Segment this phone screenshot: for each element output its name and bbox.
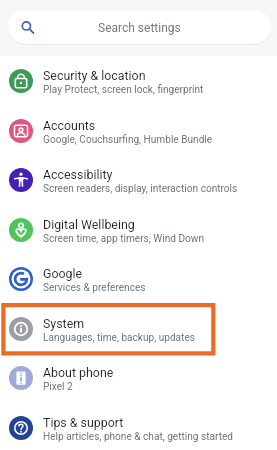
button[interactable]: Search settings xyxy=(8,10,271,44)
staticText: Screen readers, display, interaction con… xyxy=(43,183,238,195)
staticText: Security & location xyxy=(43,68,146,83)
other: Accounts xyxy=(9,119,33,143)
staticText: Accounts xyxy=(43,118,96,133)
staticText: Screen time, app timers, Wind Down xyxy=(43,233,204,245)
staticText: Tips & support xyxy=(43,415,124,430)
staticText: About phone xyxy=(43,365,114,380)
button[interactable]: Digital Wellbeing xyxy=(0,205,277,254)
staticText: Digital Wellbeing xyxy=(43,217,135,232)
button[interactable]: System xyxy=(0,304,277,353)
other: System xyxy=(9,317,33,341)
button[interactable]: Accounts xyxy=(0,106,277,155)
button[interactable]: Accessibility xyxy=(0,155,277,204)
staticText: Search settings xyxy=(98,21,181,35)
other: Security and location xyxy=(9,69,33,93)
staticText: Help articles, phone & chat, getting sta… xyxy=(43,431,234,443)
other: Digital Wellbeing xyxy=(9,218,33,242)
staticText: System xyxy=(43,316,85,331)
staticText: Pixel 2 xyxy=(43,381,73,393)
staticText: Accessibility xyxy=(43,167,113,182)
button[interactable]: Tips and support xyxy=(0,403,277,450)
other: Tips and support xyxy=(9,416,33,440)
button[interactable]: Security and location xyxy=(0,56,277,105)
staticText: Play Protect, screen lock, fingerprint xyxy=(43,84,204,96)
staticText: Google, Couchsurfing, Humble Bundle xyxy=(43,134,213,146)
other: Google xyxy=(9,267,33,291)
button[interactable]: About phone xyxy=(0,353,277,402)
button[interactable]: Google xyxy=(0,254,277,303)
staticText: Services & preferences xyxy=(43,282,146,294)
other: Accessibility xyxy=(9,168,33,192)
other: About phone xyxy=(9,366,33,390)
other: Search xyxy=(20,20,36,36)
staticText: Google xyxy=(43,266,83,281)
staticText: Languages, time, backup, updates xyxy=(43,332,195,344)
